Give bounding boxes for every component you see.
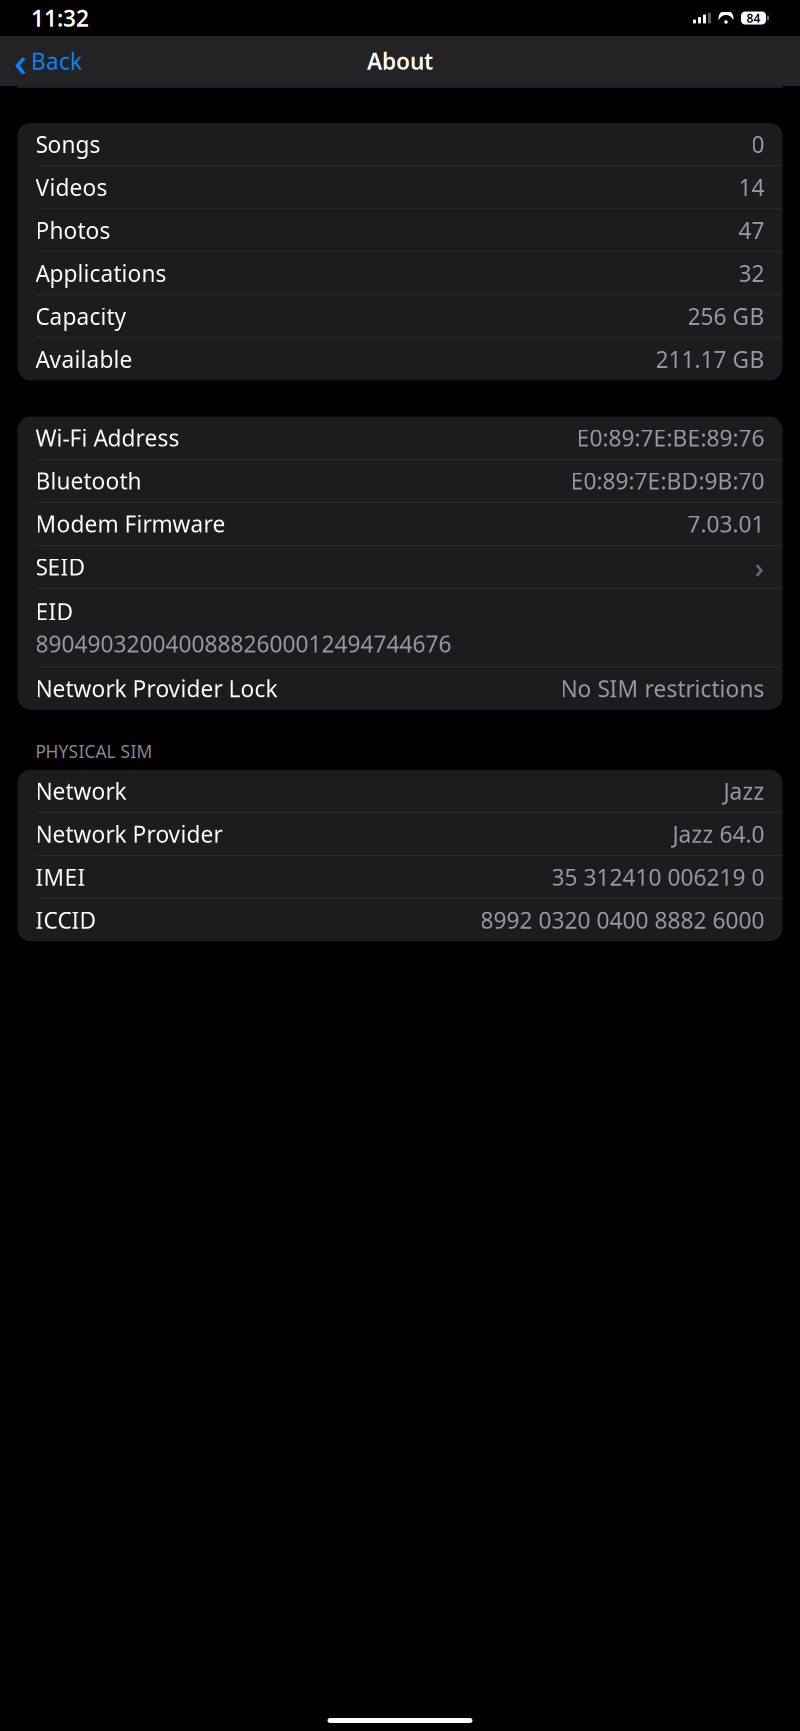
staticText: Network Provider [35,819,222,849]
staticText: EID [35,596,73,627]
staticText: 84 [746,10,760,26]
staticText: 14 [738,172,764,202]
staticText: › [754,547,764,586]
staticText: Videos [35,172,107,202]
staticText: 0 [751,129,764,159]
button[interactable]: Network Provider Lock [17,667,782,710]
staticText: Modem Firmware [35,509,225,539]
staticText: Network Provider Lock [35,673,277,703]
staticText: 35 312410 006219 0 [551,862,764,892]
staticText: Wi-Fi Address [35,423,179,453]
staticText: E0:89:7E:BE:89:76 [576,423,764,453]
staticText: Capacity [35,301,126,331]
button[interactable]: Modem Firmware [17,502,782,545]
staticText: ICCID [35,905,96,935]
staticText: 211.17 GB [655,344,764,374]
staticText: E0:89:7E:BD:9B:70 [570,466,764,496]
button[interactable]: Videos [17,166,782,208]
button[interactable]: Network [17,770,782,812]
button[interactable]: EID [17,588,782,667]
button[interactable]: Bluetooth [17,459,782,502]
button[interactable]: Songs [17,123,782,165]
staticText: 11:32 [31,3,89,33]
button[interactable]: ‹ [4,39,92,83]
staticText: SEID [35,552,85,582]
staticText: No SIM restrictions [560,673,764,703]
staticText: 7.03.01 [687,509,764,539]
button[interactable]: IMEI [17,856,782,898]
staticText: IMEI [35,862,85,892]
staticText: 47 [738,215,764,245]
staticText: PHYSICAL SIM [35,740,152,763]
button[interactable]: Capacity [17,295,782,337]
staticText: Jazz 64.0 [672,819,764,849]
button[interactable]: Wi-Fi Address [17,416,782,459]
staticText: Photos [35,215,110,245]
button[interactable]: ICCID [17,899,782,941]
staticText: ‹ [14,34,27,87]
staticText: Jazz [723,776,764,806]
button[interactable]: Available [17,338,782,380]
staticText: 256 GB [687,301,764,331]
button[interactable]: Photos [17,209,782,251]
staticText: Available [35,344,132,374]
button[interactable]: Network Provider [17,813,782,855]
staticText: 32 [738,258,764,288]
button[interactable]: Applications [17,252,782,294]
staticText: 89049032004008882600012494744676 [35,629,451,659]
button[interactable]: SEID [17,545,782,588]
staticText: Bluetooth [35,466,141,496]
staticText: About [367,46,433,76]
staticText: Songs [35,129,100,159]
staticText: 8992 0320 0400 8882 6000 [480,905,764,935]
staticText: Back [31,46,82,76]
staticText: Applications [35,258,166,288]
staticText: Network [35,776,126,806]
